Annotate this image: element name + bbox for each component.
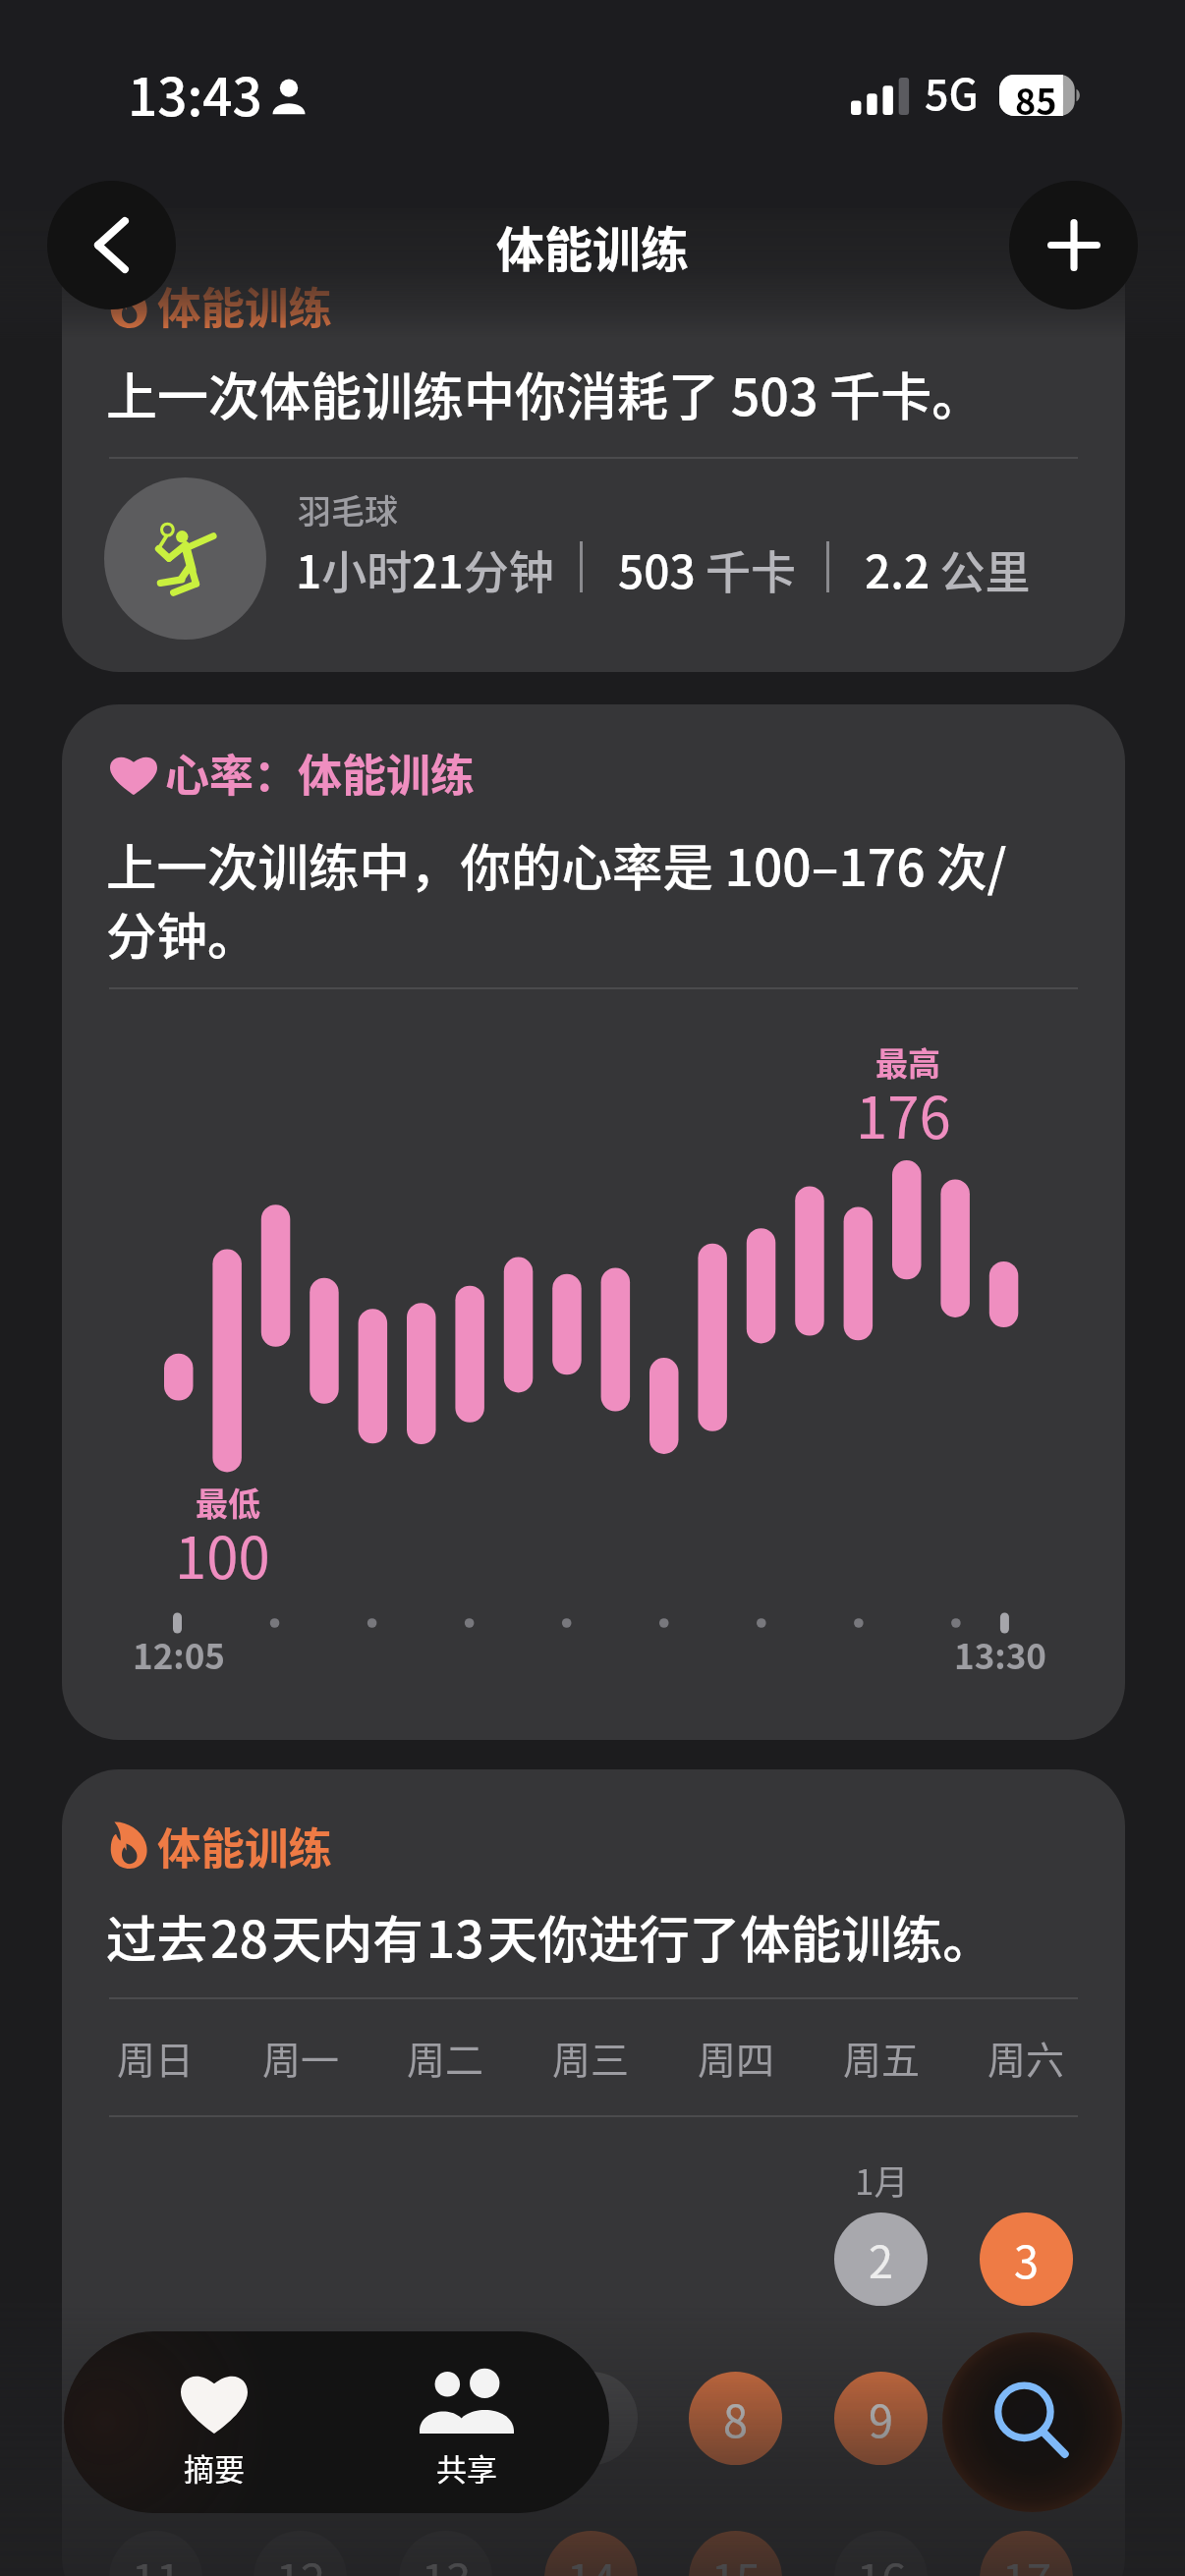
staticText: 85 <box>1015 74 1057 115</box>
staticText: 1月 <box>855 2155 909 2204</box>
staticText: 体能训练 <box>157 273 333 336</box>
button[interactable]: 3 <box>980 2212 1073 2306</box>
button[interactable]: 摘要 <box>79 2331 351 2513</box>
staticText: 周四 <box>698 2030 775 2085</box>
staticText: 100 <box>175 1513 270 1596</box>
staticText: 1小时21分钟 <box>296 536 554 597</box>
button[interactable]: 14 <box>544 2531 638 2576</box>
button[interactable]: 4 <box>109 2372 202 2465</box>
staticText: 周三 <box>552 2030 630 2085</box>
staticText: 摘要 <box>184 2445 245 2489</box>
staticText: 最高 <box>875 1038 940 1086</box>
staticText: 503 千卡 <box>618 536 797 597</box>
staticText: 上一次训练中，你的心率是 100–176 次/ 分钟。 <box>106 827 1007 970</box>
staticText: 6 <box>433 2386 458 2450</box>
staticText: 12:05 <box>133 1629 225 1679</box>
staticText: 17 <box>1002 2546 1051 2576</box>
staticText: 周一 <box>262 2030 340 2085</box>
staticText: 16 <box>857 2546 906 2576</box>
staticText: 5G <box>925 61 979 122</box>
button[interactable]: Search <box>942 2332 1122 2512</box>
staticText: 14 <box>567 2546 616 2576</box>
staticText: 共享 <box>436 2445 497 2489</box>
button[interactable]: 10 <box>980 2372 1073 2465</box>
button[interactable]: Back <box>47 181 176 309</box>
staticText: 13:30 <box>954 1629 1046 1679</box>
staticText: 176 <box>856 1073 951 1155</box>
staticText: 12 <box>276 2546 325 2576</box>
staticText: 体能训练 <box>157 1814 333 1876</box>
staticText: 最低 <box>196 1479 260 1526</box>
staticText: 13 <box>422 2546 471 2576</box>
staticText: 13:43 <box>128 56 262 132</box>
staticText: 心率：体能训练 <box>165 741 476 805</box>
staticText: 11 <box>132 2546 181 2576</box>
staticText: 周五 <box>843 2030 921 2085</box>
button[interactable]: 6 <box>399 2372 492 2465</box>
staticText: 15 <box>711 2546 761 2576</box>
button[interactable]: 7 <box>544 2372 638 2465</box>
staticText: 羽毛球 <box>298 485 398 533</box>
button[interactable]: 15 <box>689 2531 782 2576</box>
staticText: 2 <box>869 2227 893 2291</box>
staticText: 2.2 公里 <box>865 536 1031 597</box>
button[interactable]: 8 <box>689 2372 782 2465</box>
button[interactable]: 16 <box>834 2531 928 2576</box>
staticText: 8 <box>723 2386 748 2450</box>
button[interactable]: 13 <box>399 2531 492 2576</box>
staticText: 周二 <box>407 2030 484 2085</box>
button[interactable]: 心率：体能训练 <box>62 704 1125 1740</box>
staticText: 过去 28 天内有 13 天你进行了体能训练。 <box>106 1899 993 1973</box>
staticText: 3 <box>1014 2227 1039 2291</box>
staticText: 上一次体能训练中你消耗了 503 千卡。 <box>106 357 984 430</box>
button[interactable]: 9 <box>834 2372 928 2465</box>
button[interactable]: 11 <box>109 2531 202 2576</box>
staticText: 10 <box>1002 2386 1051 2450</box>
staticText: 体能训练 <box>496 211 690 281</box>
staticText: 周六 <box>987 2030 1065 2085</box>
button[interactable]: 2 <box>834 2212 928 2306</box>
button[interactable]: 体能训练 <box>62 1769 1125 2576</box>
staticText: 9 <box>869 2386 893 2450</box>
button[interactable]: 体能训练 <box>62 208 1125 672</box>
button[interactable]: 12 <box>254 2531 347 2576</box>
staticText: 周日 <box>117 2030 195 2085</box>
button[interactable]: 共享 <box>351 2331 609 2513</box>
button[interactable]: Add <box>1009 181 1138 309</box>
button[interactable]: 17 <box>980 2531 1073 2576</box>
